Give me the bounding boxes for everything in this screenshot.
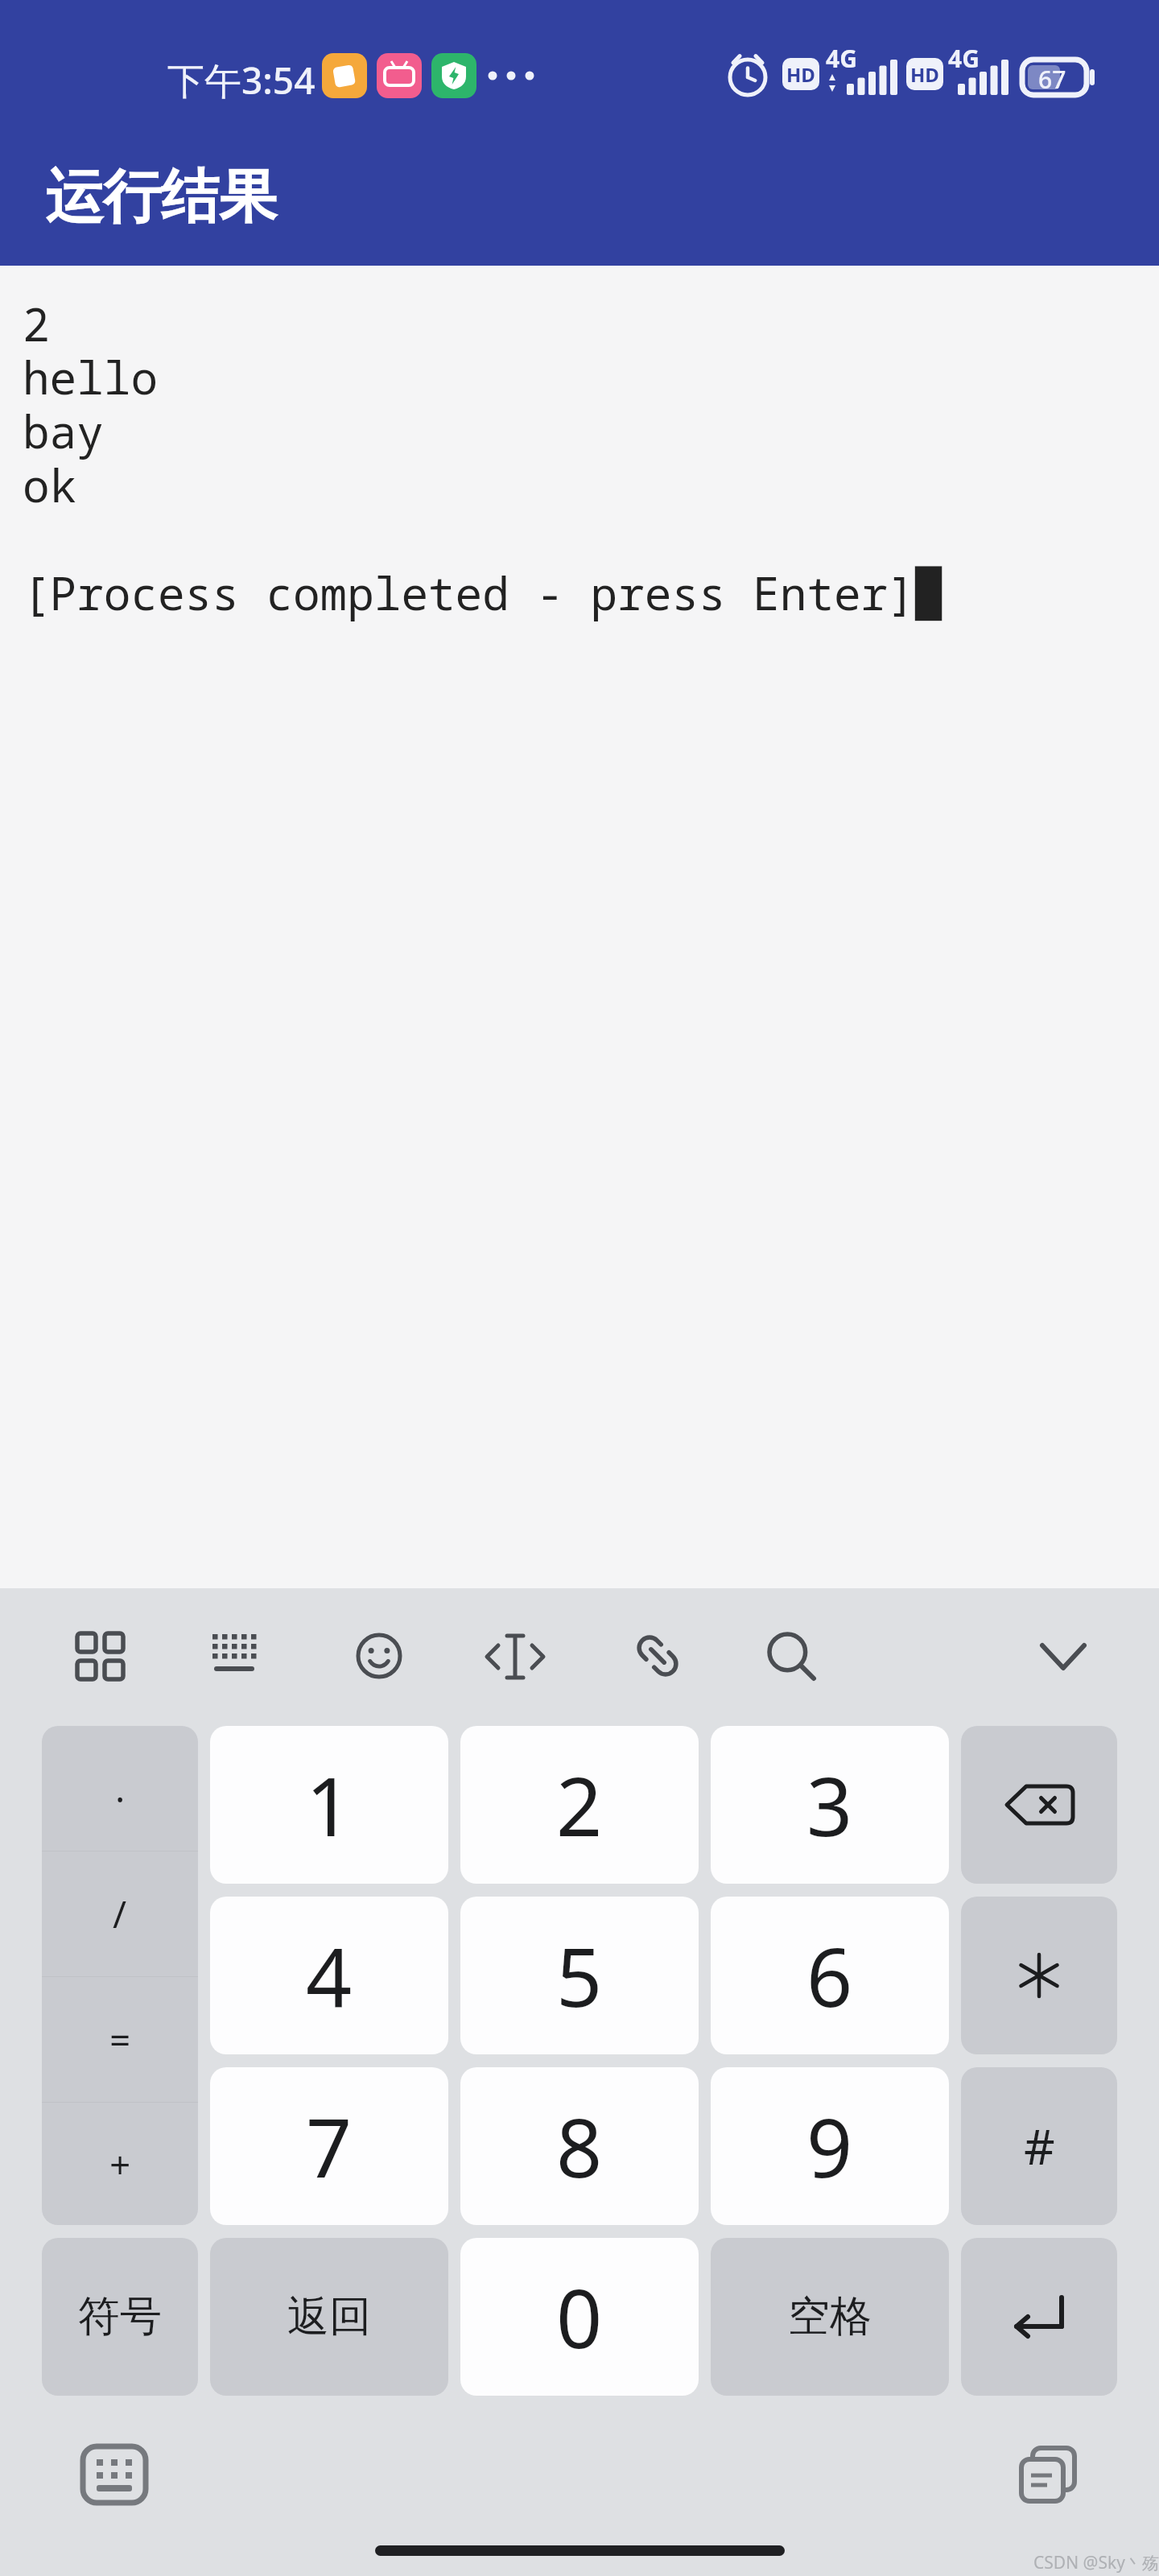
staticText: 4G: [948, 42, 980, 75]
button[interactable]: [356, 1633, 402, 1679]
staticText: CSDN @Sky丶殇: [1033, 2551, 1159, 2574]
button[interactable]: [1041, 1642, 1086, 1671]
button[interactable]: [961, 1726, 1117, 1884]
button[interactable]: 5: [460, 1897, 699, 2054]
staticText: /: [113, 1889, 127, 1939]
staticText: 空格: [788, 2290, 872, 2343]
staticText: .: [115, 1763, 126, 1814]
staticText: 1: [306, 1750, 353, 1860]
button[interactable]: 符号: [42, 2238, 198, 2396]
button[interactable]: 6: [711, 1897, 949, 2054]
button[interactable]: 4: [210, 1897, 448, 2054]
staticText: 6: [806, 1921, 853, 2030]
button[interactable]: [634, 1633, 681, 1679]
button[interactable]: #: [961, 2067, 1117, 2225]
staticText: +: [109, 2139, 131, 2190]
button[interactable]: [77, 1633, 124, 1680]
staticText: 2 hello bay ok [Process completed - pres…: [23, 293, 942, 624]
staticText: 5: [556, 1921, 603, 2030]
staticText: 4G: [826, 42, 857, 75]
button[interactable]: [74, 2438, 155, 2511]
button[interactable]: =: [42, 1977, 198, 2102]
button[interactable]: 7: [210, 2067, 448, 2225]
button[interactable]: 2: [460, 1726, 699, 1884]
staticText: 67: [1038, 63, 1066, 96]
staticText: 8: [556, 2091, 603, 2201]
button[interactable]: 3: [711, 1726, 949, 1884]
button[interactable]: 0: [460, 2238, 699, 2396]
staticText: 返回: [287, 2290, 371, 2343]
staticText: 2: [556, 1750, 603, 1860]
staticText: HD: [910, 61, 939, 88]
button[interactable]: /: [42, 1851, 198, 1976]
button[interactable]: [212, 1634, 264, 1679]
button[interactable]: +: [42, 2103, 198, 2225]
button[interactable]: [961, 1897, 1117, 2054]
button[interactable]: [487, 1634, 543, 1679]
staticText: 下午3:54: [167, 55, 316, 105]
staticText: 9: [806, 2091, 853, 2201]
button[interactable]: .: [42, 1726, 198, 1851]
button[interactable]: [1008, 2438, 1088, 2511]
staticText: 7: [306, 2091, 353, 2201]
staticText: 运行结果: [45, 161, 277, 234]
button[interactable]: 9: [711, 2067, 949, 2225]
button[interactable]: [766, 1631, 816, 1681]
button[interactable]: 1: [210, 1726, 448, 1884]
button[interactable]: 返回: [210, 2238, 448, 2396]
staticText: =: [109, 2014, 131, 2065]
staticText: 4: [306, 1921, 353, 2030]
staticText: 0: [556, 2262, 603, 2372]
staticText: 3: [806, 1750, 853, 1860]
staticText: #: [1024, 2113, 1055, 2179]
staticText: HD: [786, 61, 815, 88]
button[interactable]: 8: [460, 2067, 699, 2225]
button[interactable]: 空格: [711, 2238, 949, 2396]
staticText: 符号: [78, 2290, 162, 2343]
button[interactable]: [961, 2238, 1117, 2396]
